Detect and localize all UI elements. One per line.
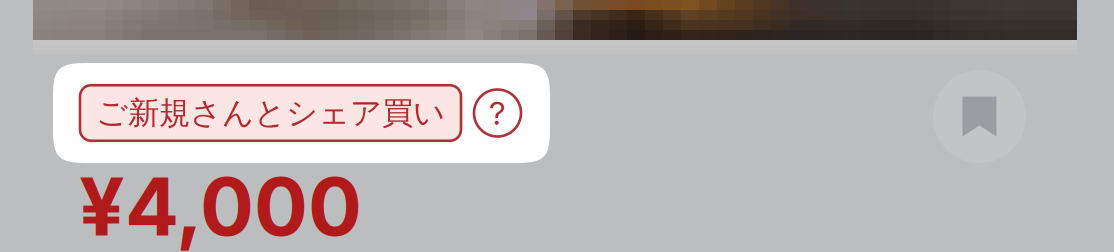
staticText: ?: [489, 94, 506, 132]
staticText: ¥4,000: [79, 158, 362, 252]
button[interactable]: Save: [933, 70, 1026, 163]
staticText: ご新規さんとシェア買い: [96, 93, 445, 133]
button[interactable]: ご新規さんとシェア買い: [53, 63, 550, 163]
